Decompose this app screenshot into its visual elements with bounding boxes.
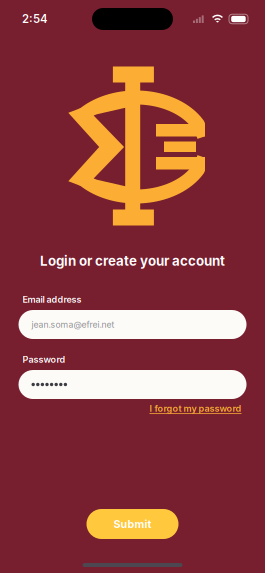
staticText: Password (22, 354, 65, 365)
staticText: 2:54 (22, 12, 48, 26)
button[interactable]: jean.soma@efrei.net (18, 310, 246, 339)
button[interactable] (18, 370, 246, 399)
staticText: Login or create your account (40, 253, 225, 269)
staticText: I forgot my password (149, 403, 241, 414)
button[interactable]: I forgot my password (149, 403, 246, 414)
staticText: jean.soma@efrei.net (31, 319, 114, 330)
button[interactable]: Submit (86, 509, 178, 539)
staticText: Email address (22, 294, 81, 305)
staticText: Submit (113, 517, 151, 530)
